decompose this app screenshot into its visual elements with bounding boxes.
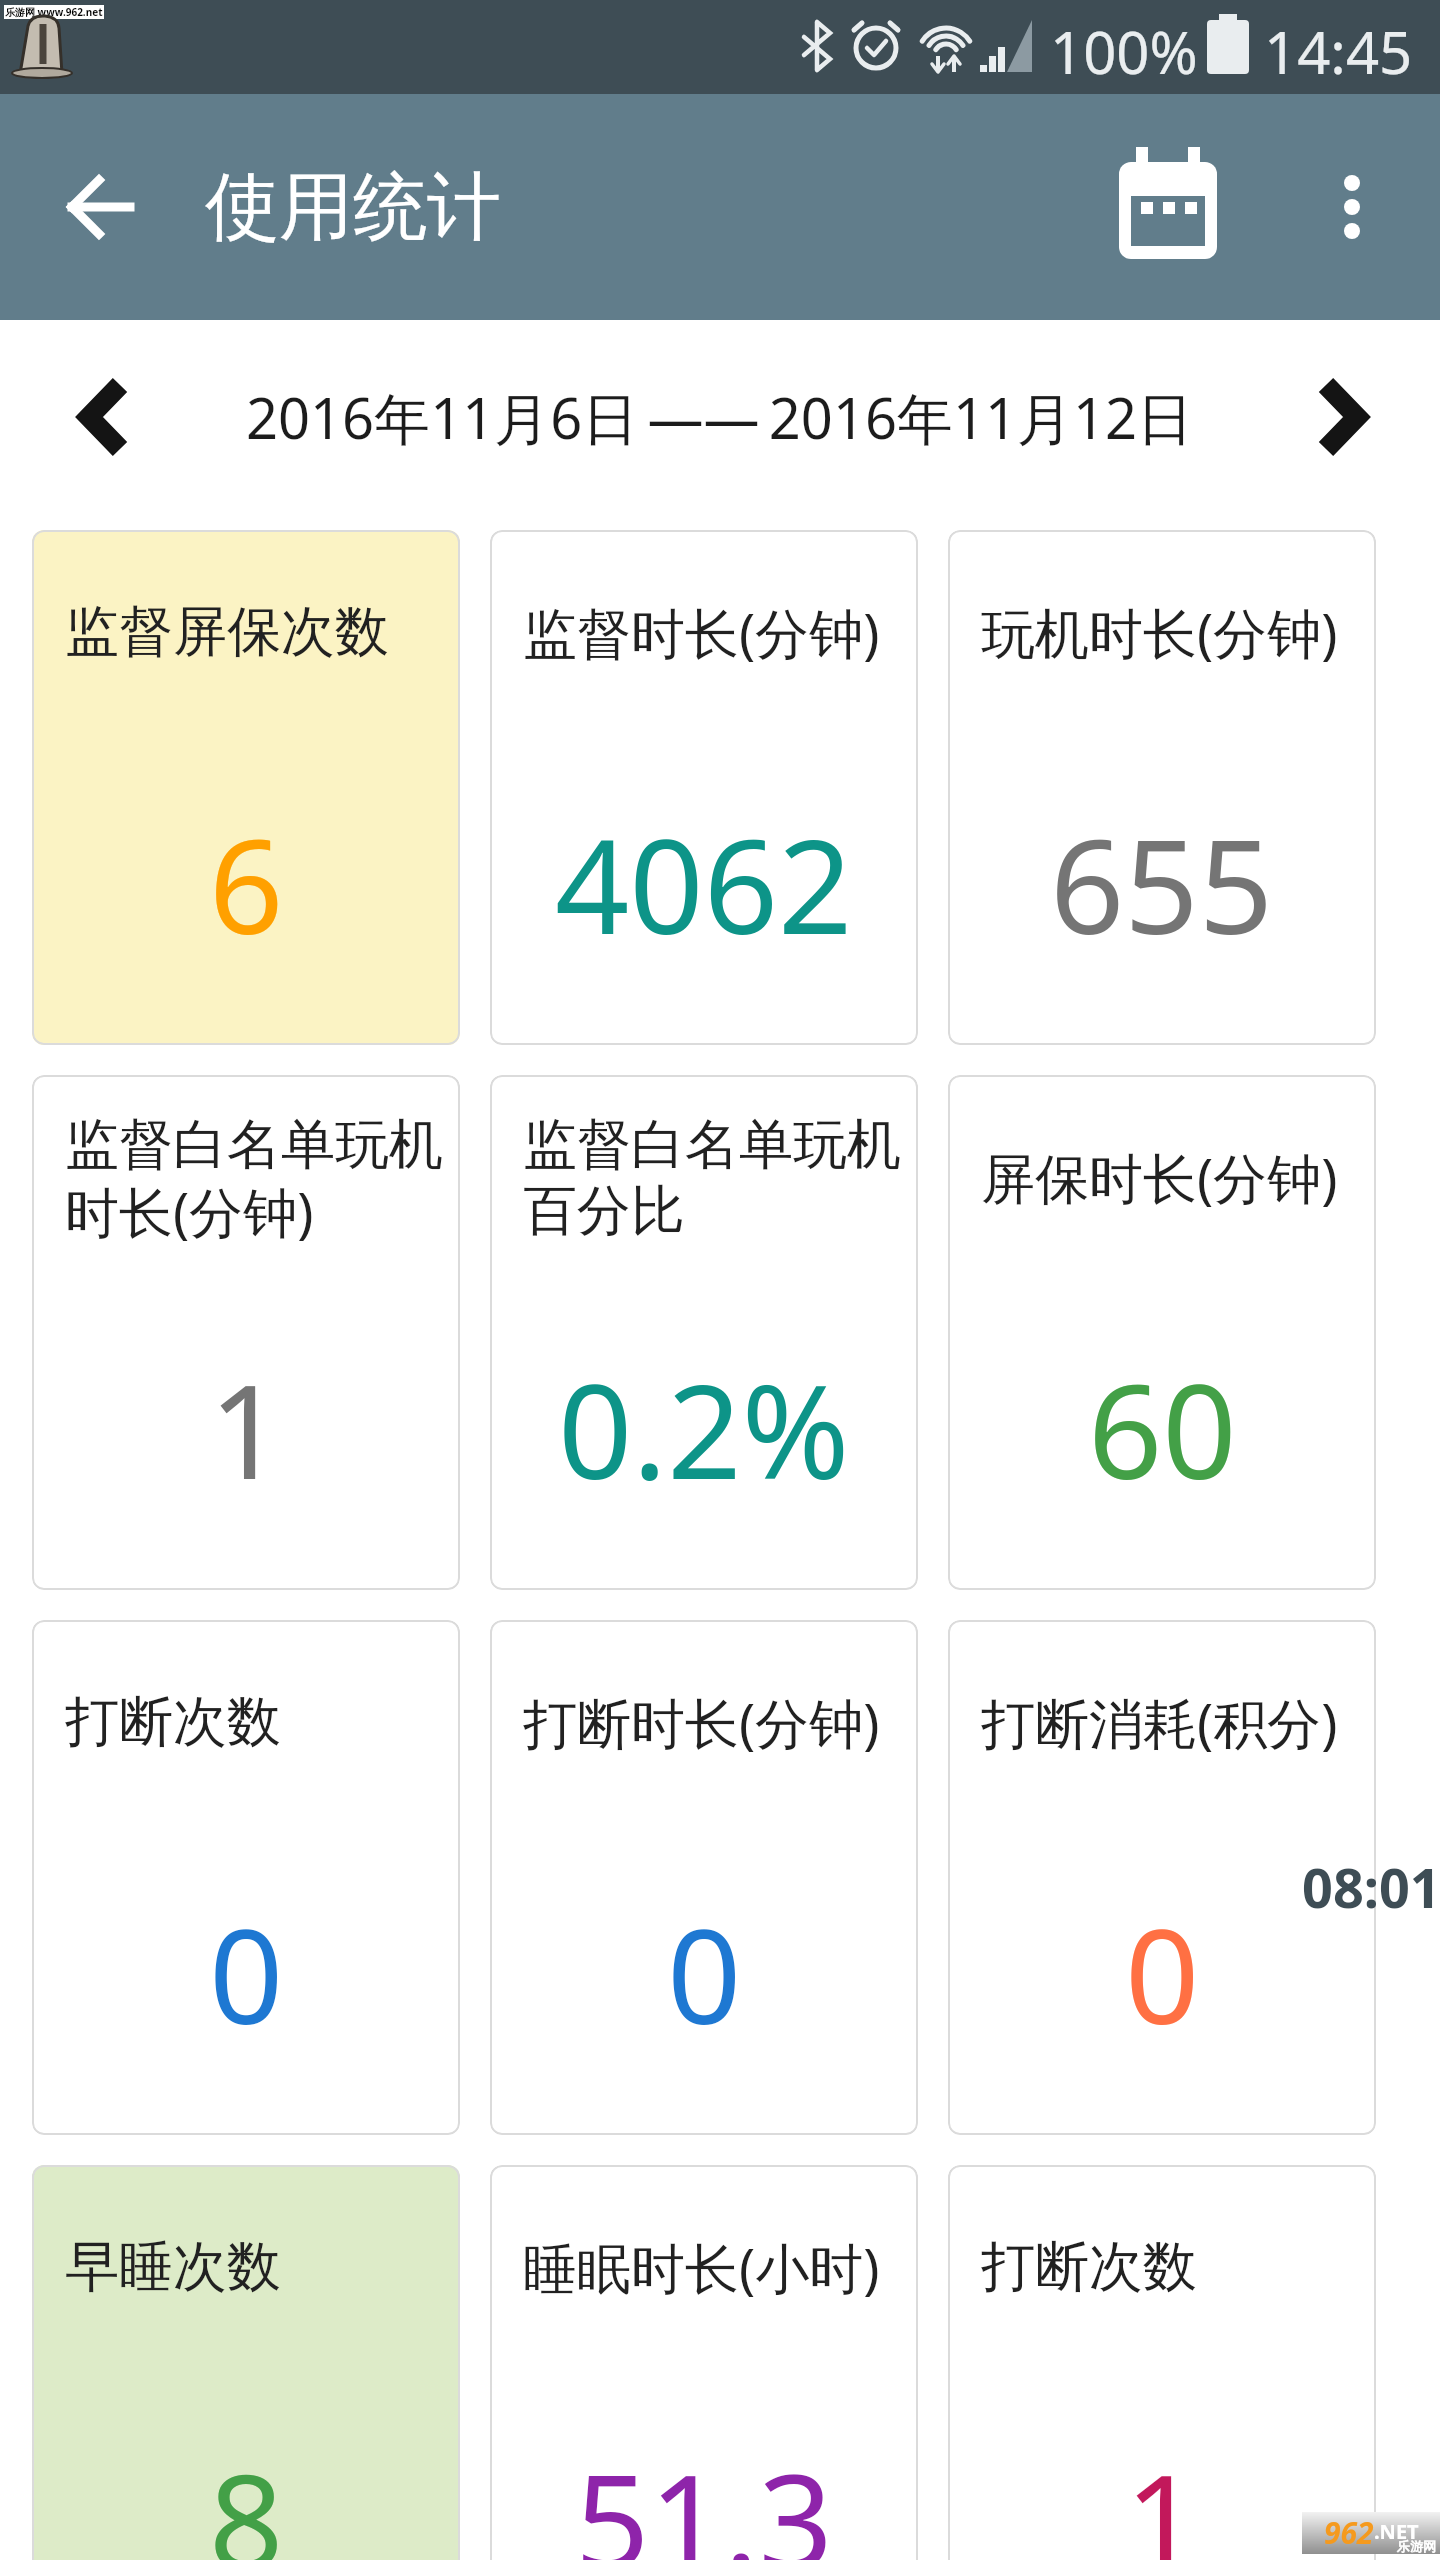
button[interactable]: 打断次数 (948, 2165, 1376, 2560)
staticText: 监督屏保次数 (65, 598, 389, 666)
staticText: 早睡次数 (65, 2233, 281, 2301)
button[interactable]: 玩机时长(分钟) (948, 530, 1376, 1045)
staticText: 962 (1324, 2512, 1374, 2553)
staticText: 1 (1125, 2430, 1200, 2560)
button[interactable]: 打断次数 (32, 1620, 460, 2135)
staticText: 655 (1050, 795, 1274, 960)
staticText: 乐游网 www.962.net (5, 5, 103, 19)
staticText: 0 (209, 1885, 284, 2050)
button[interactable]: 睡眠时长(小时) (490, 2165, 918, 2560)
staticText: 打断消耗(积分) (981, 1685, 1338, 1759)
staticText: 打断时长(分钟) (523, 1685, 880, 1759)
staticText: 1 (209, 1340, 284, 1505)
staticText: 2016年11月6日 —— 2016年11月12日 (246, 379, 1194, 455)
staticText: 使用统计 (205, 161, 501, 254)
staticText: 14:45 (1264, 12, 1413, 91)
button[interactable] (1304, 159, 1400, 255)
staticText: 睡眠时长(小时) (523, 2230, 880, 2304)
staticText: 屏保时长(分钟) (981, 1140, 1338, 1214)
staticText: 51.3 (575, 2430, 833, 2560)
button[interactable]: 打断时长(分钟) (490, 1620, 918, 2135)
staticText: 乐游网 (1397, 2538, 1436, 2554)
staticText: 0 (1125, 1885, 1200, 2050)
button[interactable] (1286, 365, 1406, 485)
staticText: 4062 (555, 795, 853, 960)
staticText: 监督白名单玩机 百分比 (523, 1111, 901, 1243)
staticText: 08:01 (1302, 1850, 1440, 1924)
button[interactable]: 屏保时长(分钟) (948, 1075, 1376, 1590)
staticText: 监督时长(分钟) (523, 595, 880, 669)
staticText: 60 (1088, 1340, 1237, 1505)
button[interactable]: 监督时长(分钟) (490, 530, 918, 1045)
staticText: .NET (1374, 2518, 1419, 2545)
staticText: 监督白名单玩机 时长(分钟) (65, 1111, 443, 1243)
staticText: 0 (667, 1885, 742, 2050)
button[interactable] (40, 365, 160, 485)
staticText: 8 (209, 2430, 284, 2560)
staticText: 玩机时长(分钟) (981, 595, 1338, 669)
button[interactable]: 早睡次数 (32, 2165, 460, 2560)
button[interactable] (48, 155, 152, 259)
button[interactable]: 监督屏保次数 (32, 530, 460, 1045)
staticText: 打断次数 (65, 1688, 281, 1756)
staticText: 打断次数 (981, 2233, 1197, 2301)
staticText: 100% (1050, 12, 1198, 91)
button[interactable] (1105, 140, 1231, 266)
button[interactable]: 监督白名单玩机 百分比 (490, 1075, 918, 1590)
button[interactable]: 监督白名单玩机 时长(分钟) (32, 1075, 460, 1590)
staticText: 0.2% (558, 1340, 850, 1505)
button[interactable]: 打断消耗(积分) (948, 1620, 1376, 2135)
staticText: 6 (209, 795, 284, 960)
